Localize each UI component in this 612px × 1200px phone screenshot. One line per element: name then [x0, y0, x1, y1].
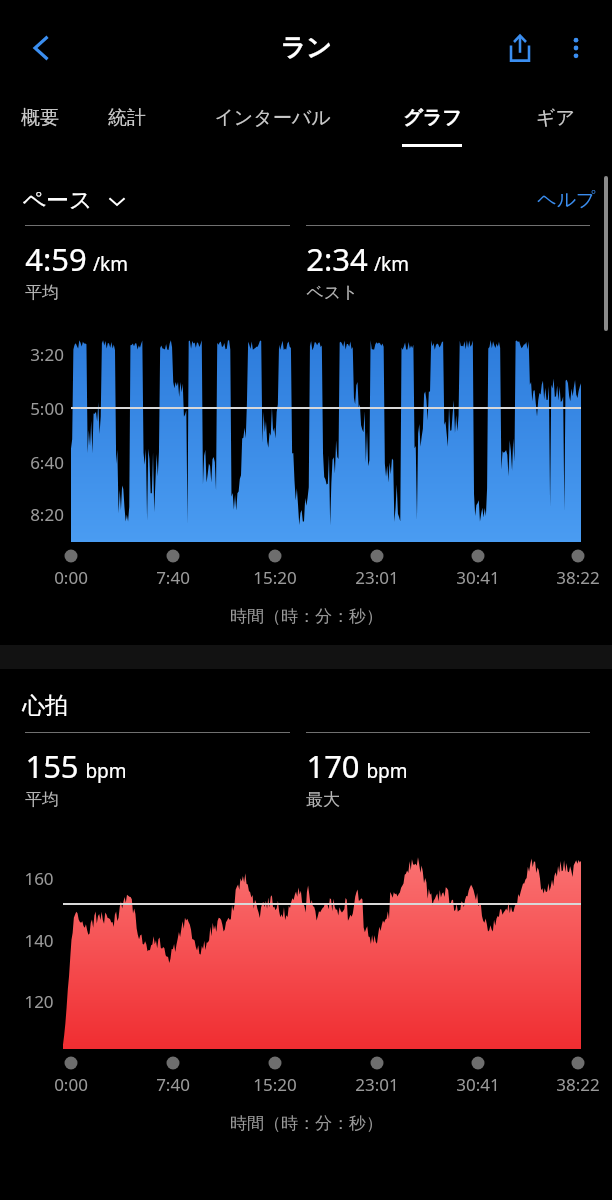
staticText: 140	[24, 929, 54, 952]
staticText: インターバル	[214, 106, 331, 130]
staticText: 平均	[25, 282, 59, 303]
staticText: 0:00	[54, 1073, 88, 1096]
staticText: 概要	[21, 106, 59, 130]
staticText: 23:01	[355, 1073, 399, 1096]
staticText: 7:40	[156, 566, 190, 589]
staticText: 15:20	[253, 566, 297, 589]
button[interactable]: 概要	[0, 95, 80, 165]
staticText: 170	[306, 745, 360, 787]
staticText: ベスト	[306, 282, 359, 303]
staticText: bpm	[85, 758, 127, 784]
staticText: 15:20	[253, 1073, 297, 1096]
staticText: 0:00	[54, 566, 88, 589]
button[interactable]: ヘルプ	[537, 188, 596, 212]
staticText: 38:22	[556, 1073, 600, 1096]
staticText: 38:22	[556, 566, 600, 589]
staticText: 30:41	[456, 1073, 500, 1096]
staticText: 心拍	[22, 691, 68, 720]
staticText: bpm	[366, 758, 408, 784]
staticText: 時間（時：分：秒）	[230, 606, 383, 627]
staticText: 最大	[306, 789, 340, 810]
staticText: ペース	[22, 186, 93, 215]
staticText: 統計	[108, 106, 146, 130]
button[interactable]: Back	[14, 21, 68, 75]
staticText: 120	[24, 990, 54, 1013]
staticText: 155	[25, 745, 79, 787]
staticText: 23:01	[355, 566, 399, 589]
staticText: 3:20	[30, 343, 64, 366]
staticText: /km	[93, 251, 128, 277]
staticText: 6:40	[30, 451, 64, 474]
button[interactable]: インターバル	[197, 95, 347, 165]
staticText: 30:41	[456, 566, 500, 589]
button[interactable]: ギア	[515, 95, 595, 165]
staticText: 平均	[25, 789, 59, 810]
staticText: /km	[374, 251, 409, 277]
staticText: ギア	[536, 106, 575, 130]
staticText: 4:59	[25, 238, 87, 280]
staticText: ヘルプ	[537, 188, 596, 212]
staticText: グラフ	[403, 106, 462, 130]
staticText: 160	[24, 867, 54, 890]
button[interactable]: 統計	[87, 95, 167, 165]
staticText: 2:34	[306, 238, 368, 280]
staticText: 5:00	[30, 397, 64, 420]
button[interactable]: Share	[492, 20, 548, 76]
staticText: 時間（時：分：秒）	[230, 1113, 383, 1134]
button[interactable]: グラフ	[387, 95, 477, 165]
staticText: ラン	[280, 32, 332, 63]
button[interactable]: ペース	[22, 186, 127, 215]
staticText: 8:20	[30, 503, 64, 526]
staticText: 7:40	[156, 1073, 190, 1096]
button[interactable]: More options	[548, 20, 604, 76]
